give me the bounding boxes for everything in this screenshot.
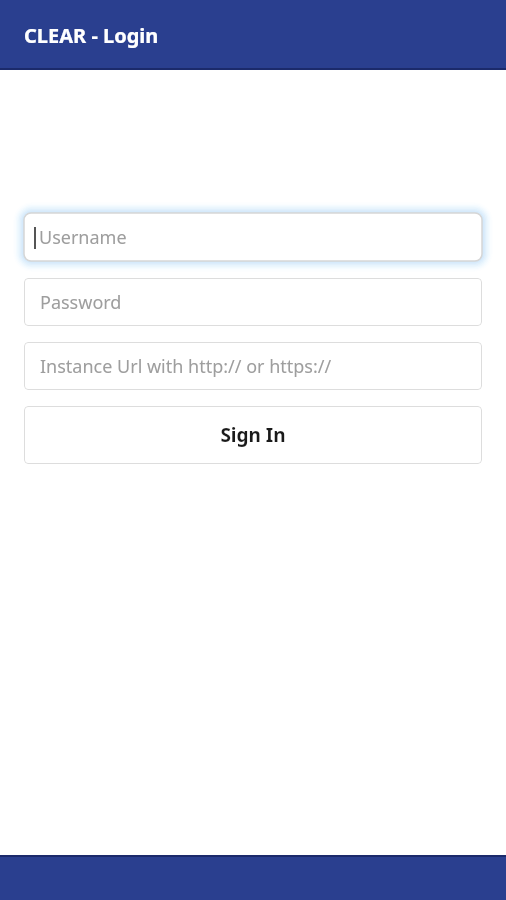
staticText: Sign In (220, 422, 286, 448)
button[interactable]: Password (24, 278, 482, 326)
staticText: Instance Url with http:// or https:// (40, 354, 332, 379)
staticText: Username (39, 225, 127, 250)
staticText: Password (40, 290, 122, 315)
staticText: CLEAR - Login (24, 22, 159, 49)
button[interactable]: Sign In (24, 406, 482, 464)
button[interactable]: Instance Url with http:// or https:// (24, 342, 482, 390)
button[interactable]: Username (14, 203, 492, 271)
